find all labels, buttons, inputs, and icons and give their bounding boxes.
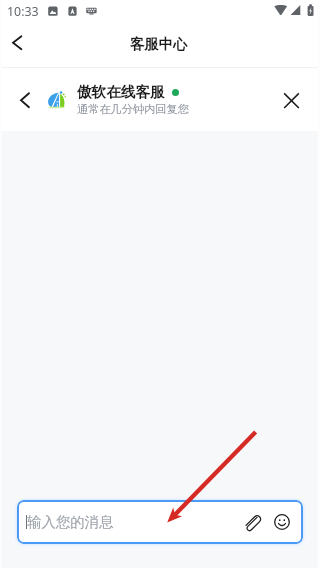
button[interactable]: Close — [269, 78, 313, 122]
button[interactable]: Attach file — [237, 508, 265, 536]
staticText: 傲软在线客服 — [77, 83, 165, 101]
button[interactable]: Back — [0, 28, 34, 62]
staticText: 10:33 — [7, 3, 39, 20]
button[interactable]: Emoji — [268, 508, 296, 536]
button[interactable]: Back — [5, 80, 45, 120]
button[interactable]: 输入您的消息 — [17, 500, 303, 544]
staticText: 通常在几分钟内回复您 — [77, 102, 189, 116]
staticText: 客服中心 — [130, 35, 188, 53]
staticText: 输入您的消息 — [27, 513, 114, 531]
